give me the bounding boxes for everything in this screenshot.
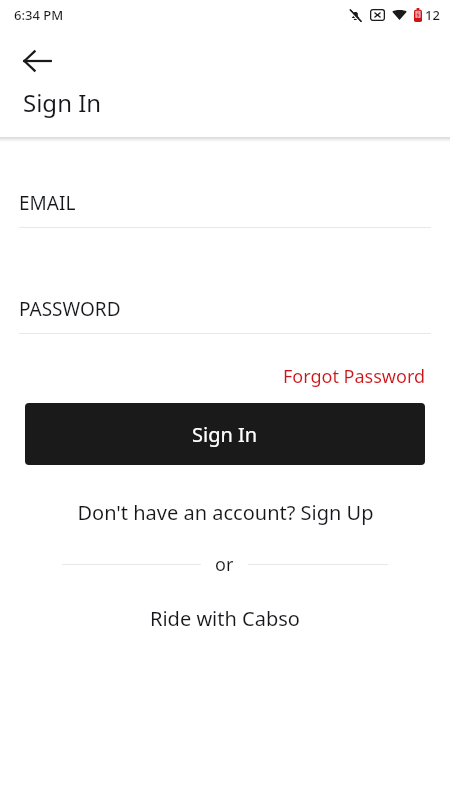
staticText: Sign In — [23, 86, 102, 119]
button[interactable]: EMAIL — [19, 190, 431, 228]
staticText: Ride with Cabso — [150, 605, 300, 632]
staticText: EMAIL — [19, 190, 76, 216]
button[interactable]: Back — [14, 38, 60, 84]
staticText: Sign In — [192, 421, 258, 448]
staticText: Don't have an account? Sign Up — [77, 499, 374, 526]
staticText: Forgot Password — [283, 364, 426, 389]
button[interactable]: Don't have an account? Sign Up — [77, 499, 374, 526]
staticText: 6:34 PM — [14, 6, 64, 24]
button[interactable]: PASSWORD — [19, 296, 431, 334]
staticText: PASSWORD — [19, 296, 121, 322]
staticText: or — [215, 552, 234, 577]
staticText: 12 — [425, 6, 440, 24]
button[interactable]: Forgot Password — [283, 364, 426, 389]
button[interactable]: Sign In — [25, 403, 425, 465]
button[interactable]: Ride with Cabso — [150, 605, 300, 632]
